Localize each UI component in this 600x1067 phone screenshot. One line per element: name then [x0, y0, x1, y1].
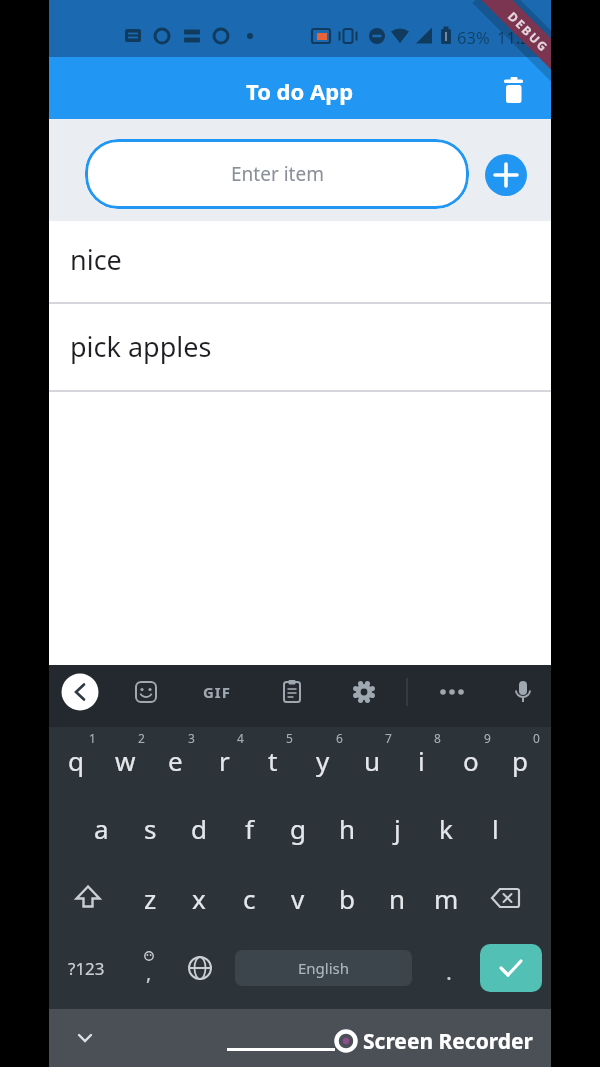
button[interactable]: f [226, 797, 272, 859]
button[interactable]: ?123 [56, 953, 116, 983]
staticText: 11:20 [497, 26, 540, 48]
staticText: 5 [286, 730, 293, 746]
button[interactable]: English [235, 950, 412, 986]
button[interactable]: k [423, 797, 469, 859]
staticText: GIF [203, 682, 231, 702]
staticText: y [316, 743, 330, 778]
staticText: d [191, 811, 207, 846]
button[interactable]: y [300, 729, 346, 791]
staticText: ?123 [68, 957, 105, 980]
button[interactable]: j [374, 797, 420, 859]
button[interactable] [504, 673, 542, 711]
staticText: DEBUG [505, 8, 551, 56]
staticText: nice [70, 241, 122, 278]
button[interactable]: x [176, 867, 222, 929]
button[interactable]: b [324, 867, 370, 929]
button[interactable] [483, 867, 533, 929]
staticText: 9 [484, 730, 491, 746]
staticText: pick apples [70, 328, 212, 365]
staticText: To do App [246, 76, 354, 106]
button[interactable]: l [472, 797, 518, 859]
staticText: 3 [188, 730, 195, 746]
button[interactable]: g [275, 797, 321, 859]
button[interactable]: Enter item [85, 139, 469, 209]
staticText: g [290, 811, 306, 846]
button[interactable]: h [324, 797, 370, 859]
button[interactable] [49, 221, 551, 302]
staticText: q [68, 743, 84, 778]
staticText: Screen Recorder [363, 1027, 533, 1056]
button[interactable] [345, 673, 383, 711]
staticText: t [268, 743, 278, 778]
button[interactable]: , [137, 957, 161, 987]
staticText: j [394, 811, 401, 846]
button[interactable]: m [423, 867, 469, 929]
staticText: a [94, 811, 109, 846]
button[interactable]: q [53, 729, 99, 791]
staticText: k [439, 811, 453, 846]
staticText: z [144, 881, 157, 916]
staticText: Enter item [231, 161, 324, 187]
button[interactable]: z [127, 867, 173, 929]
staticText: 1 [89, 730, 96, 746]
staticText: u [364, 743, 381, 778]
staticText: 8 [434, 730, 441, 746]
staticText: s [144, 811, 157, 846]
button[interactable]: u [349, 729, 395, 791]
staticText: w [115, 743, 136, 778]
button[interactable]: a [78, 797, 124, 859]
button[interactable] [49, 303, 551, 390]
staticText: 7 [385, 730, 392, 746]
staticText: i [418, 743, 425, 778]
staticText: . [446, 956, 452, 986]
button[interactable] [485, 154, 527, 196]
staticText: o [463, 743, 479, 778]
button[interactable] [433, 673, 471, 711]
staticText: m [434, 881, 459, 916]
staticText: English [298, 958, 350, 978]
staticText: 4 [237, 730, 244, 746]
staticText: b [339, 881, 355, 916]
button[interactable]: i [398, 729, 444, 791]
staticText: 0 [533, 730, 540, 746]
button[interactable]: e [152, 729, 198, 791]
button[interactable] [273, 673, 311, 711]
staticText: e [168, 743, 183, 778]
button[interactable]: v [275, 867, 321, 929]
staticText: 63% [457, 26, 490, 48]
button[interactable] [480, 944, 542, 992]
staticText: v [291, 881, 305, 916]
button[interactable] [61, 673, 99, 711]
staticText: , [146, 959, 152, 986]
button[interactable]: GIF [187, 680, 247, 704]
staticText: h [339, 811, 356, 846]
button[interactable]: w [102, 729, 148, 791]
staticText: 6 [336, 730, 343, 746]
button[interactable] [127, 673, 165, 711]
button[interactable]: d [176, 797, 222, 859]
staticText: p [512, 743, 528, 778]
staticText: c [243, 881, 256, 916]
button[interactable]: r [201, 729, 247, 791]
button[interactable]: . [437, 956, 461, 986]
staticText: 2 [138, 730, 145, 746]
staticText: r [219, 743, 230, 778]
button[interactable]: c [226, 867, 272, 929]
button[interactable] [175, 937, 225, 999]
button[interactable]: p [497, 729, 543, 791]
button[interactable]: n [374, 867, 420, 929]
button[interactable]: o [448, 729, 494, 791]
button[interactable] [494, 67, 542, 115]
staticText: f [245, 811, 254, 846]
button[interactable]: t [250, 729, 296, 791]
button[interactable] [63, 867, 113, 929]
staticText: x [192, 881, 206, 916]
button[interactable]: s [127, 797, 173, 859]
staticText: n [389, 881, 406, 916]
staticText: l [492, 811, 499, 846]
